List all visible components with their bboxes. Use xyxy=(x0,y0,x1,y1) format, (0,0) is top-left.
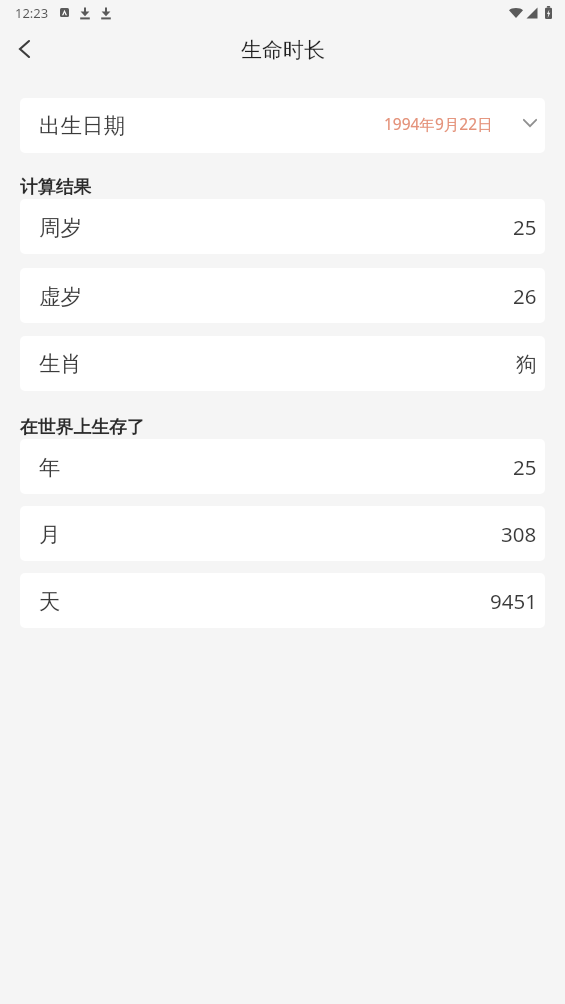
staticText: 计算结果 xyxy=(20,176,92,198)
staticText: 9451 xyxy=(490,587,537,615)
staticText: 在世界上生存了 xyxy=(20,416,145,438)
button[interactable]: 虚岁 xyxy=(20,268,545,323)
staticText: 生命时长 xyxy=(241,37,325,63)
button[interactable]: 年 xyxy=(20,439,545,494)
staticText: 周岁 xyxy=(39,214,82,241)
staticText: 1994年9月22日 xyxy=(384,113,493,134)
staticText: 25 xyxy=(513,213,537,241)
button[interactable]: 周岁 xyxy=(20,199,545,254)
staticText: 生肖 xyxy=(39,350,82,377)
staticText: 虚岁 xyxy=(39,283,82,310)
staticText: 出生日期 xyxy=(39,112,125,139)
staticText: 狗 xyxy=(516,351,537,377)
button[interactable]: 出生日期 xyxy=(20,98,545,153)
staticText: 12:23 xyxy=(15,4,49,22)
staticText: 天 xyxy=(39,588,61,615)
button[interactable]: Back xyxy=(0,25,48,73)
button[interactable]: 生肖 xyxy=(20,336,545,391)
button[interactable]: 天 xyxy=(20,573,545,628)
staticText: 月 xyxy=(39,521,61,548)
button[interactable]: 月 xyxy=(20,506,545,561)
staticText: 年 xyxy=(39,454,61,481)
staticText: 25 xyxy=(513,453,537,481)
staticText: 308 xyxy=(501,520,537,548)
staticText: 26 xyxy=(513,282,537,310)
